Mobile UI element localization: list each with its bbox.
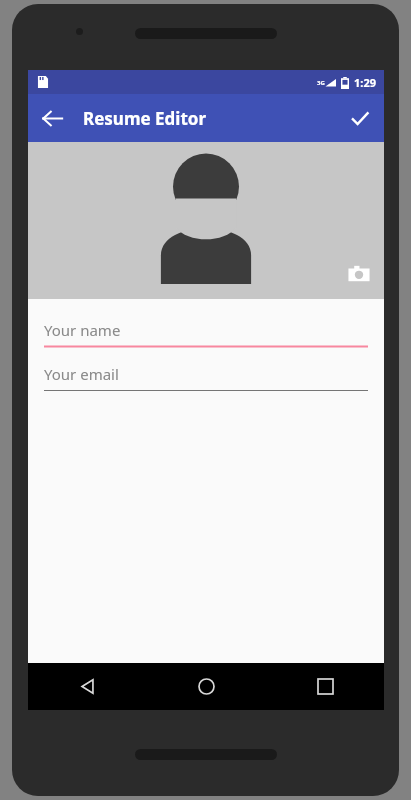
button[interactable]: Your email <box>44 359 368 392</box>
button[interactable]: Recents <box>301 663 349 710</box>
staticText: Your email <box>44 364 119 384</box>
button[interactable]: Back <box>32 98 72 138</box>
staticText: 1:29 <box>354 75 376 90</box>
staticText: 3G <box>317 79 325 87</box>
staticText: Resume Editor <box>83 107 206 130</box>
button[interactable]: Back <box>63 663 111 710</box>
button[interactable]: Change photo <box>344 259 374 289</box>
staticText: Your name <box>44 320 121 340</box>
button[interactable]: Your name <box>44 315 368 348</box>
button[interactable]: Home <box>182 663 230 710</box>
button[interactable]: Save <box>340 98 380 138</box>
